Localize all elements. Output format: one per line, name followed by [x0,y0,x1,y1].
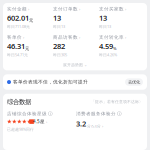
staticText: 综合数据 [7,98,31,106]
button[interactable]: 支付买家数 [99,6,143,29]
staticText: 46.31 [7,41,25,51]
staticText: › [79,34,80,40]
button[interactable]: 客单价 [7,34,51,57]
staticText: › [79,6,80,12]
staticText: 展开趋势图 [63,62,83,67]
staticText: 4.59 [99,41,113,51]
staticText: 602.01 [7,13,29,23]
button[interactable]: 支付订单数 [53,6,97,29]
button[interactable]: 展开趋势图 [7,62,143,67]
staticText: 商品访客数 [53,34,78,40]
button[interactable]: 商品访客数 [53,34,97,57]
button[interactable]: 实付金额 [7,6,51,29]
staticText: › [46,119,47,124]
staticText: 客单价表现不佳，优化折扣可提升 [13,79,88,85]
staticText: 13 [53,13,61,23]
staticText: 282 [53,41,65,51]
staticText: 13 [99,13,107,23]
button[interactable]: 支付转化率 [99,34,143,57]
staticText: 已超越98%同行 [7,127,34,132]
staticText: 实付金额 [7,6,27,12]
staticText: › [28,6,29,12]
staticText: 3.2 [76,118,86,129]
staticText: › [125,6,126,12]
staticText: › [125,34,126,40]
staticText: › [23,34,24,40]
staticText: 昨日4.26% [99,52,117,57]
staticText: 昨日54.71元 [7,52,28,57]
staticText: 4.5星 [33,118,45,125]
staticText: 支付买家数 [99,6,124,12]
button[interactable]: 客单价表现不佳，优化折扣可提升 [3,74,147,90]
staticText: 昨日13 [99,24,111,29]
staticText: ⌄ [84,63,87,67]
staticText: 支付转化率 [99,34,124,40]
staticText: › [102,123,103,129]
button[interactable]: 店铺综合体验星级 ⓘ [7,111,74,132]
staticText: 元 [29,18,33,23]
staticText: 昨日711.08元 [7,24,30,29]
button[interactable]: 消费者服务体验分 ⓘ [76,111,143,129]
staticText: 支付订单数 [53,6,78,12]
staticText: 昨日305 [53,52,67,57]
staticText: 分/5.0分 [87,123,101,129]
staticText: 昨日13 [53,24,65,29]
staticText: 元 [25,46,29,51]
staticText: 客单价 [7,34,22,40]
staticText: 消费者服务体验分 ⓘ [76,111,122,116]
staticText: % [113,45,117,51]
staticText: 去优化 [128,79,140,85]
staticText: 店铺综合体验星级 ⓘ [7,111,53,116]
staticText: 「提示」若有任意项不达标〉 [91,99,143,104]
